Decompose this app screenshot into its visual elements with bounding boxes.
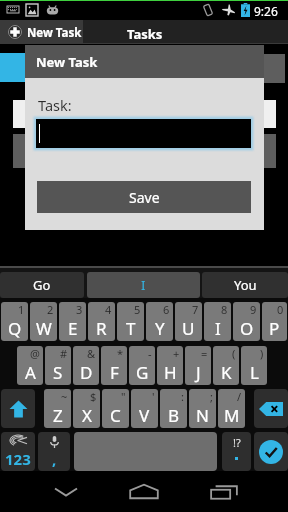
button[interactable]: 3 xyxy=(59,302,86,341)
button[interactable]: Backspace xyxy=(254,389,288,428)
staticText: F xyxy=(110,361,119,384)
button[interactable]: You xyxy=(202,272,288,298)
staticText: R xyxy=(96,317,107,340)
button[interactable]: Home xyxy=(110,471,178,512)
button[interactable]: 7 xyxy=(175,302,202,341)
button[interactable]: + xyxy=(157,346,183,385)
staticText: I xyxy=(215,317,221,340)
button[interactable]: Space xyxy=(74,432,217,471)
staticText: N xyxy=(196,404,209,427)
staticText: # xyxy=(60,346,68,361)
staticText: Z xyxy=(53,404,63,427)
button[interactable]: Recents xyxy=(190,471,258,512)
staticText: & xyxy=(87,346,96,361)
staticText: U xyxy=(182,317,195,340)
button[interactable]: * xyxy=(101,346,127,385)
button[interactable]: Shift xyxy=(1,389,35,428)
staticText: 9 xyxy=(250,302,257,317)
staticText: ' xyxy=(152,389,155,404)
button[interactable]: ( xyxy=(213,346,239,385)
staticText: " xyxy=(121,389,126,404)
staticText: ) xyxy=(260,346,264,361)
button[interactable]: @ xyxy=(17,346,43,385)
staticText: J xyxy=(196,361,201,384)
button[interactable]: !? xyxy=(222,432,251,471)
button[interactable]: I xyxy=(87,272,200,298)
button[interactable]: 8 xyxy=(204,302,231,341)
staticText: 123 xyxy=(5,449,31,469)
staticText: E xyxy=(68,317,78,340)
button[interactable]: $ xyxy=(73,389,100,428)
button[interactable]: & xyxy=(73,346,99,385)
button[interactable]: ~ xyxy=(44,389,71,428)
button[interactable]: 5 xyxy=(117,302,144,341)
staticText: T xyxy=(126,317,136,340)
button[interactable]: Back xyxy=(30,471,102,512)
staticText: K xyxy=(221,361,232,384)
staticText: O xyxy=(240,317,254,340)
button[interactable]: 123 xyxy=(1,432,35,471)
staticText: New Task xyxy=(27,25,82,41)
button[interactable]: 6 xyxy=(146,302,173,341)
staticText: Y xyxy=(155,317,165,340)
button[interactable]: ' xyxy=(131,389,158,428)
staticText: 4 xyxy=(105,302,112,317)
staticText: W xyxy=(36,317,52,340)
button[interactable]: - xyxy=(129,346,155,385)
staticText: Go xyxy=(33,276,51,294)
button[interactable]: Enter xyxy=(254,432,288,471)
button[interactable]: 0 xyxy=(262,302,287,341)
button[interactable]: , xyxy=(38,432,70,471)
staticText: / xyxy=(237,389,242,404)
staticText: 0 xyxy=(277,302,284,317)
staticText: X xyxy=(82,404,92,427)
button[interactable]: # xyxy=(45,346,71,385)
staticText: ( xyxy=(232,346,236,361)
staticText: S xyxy=(53,361,63,384)
staticText: 7 xyxy=(192,302,199,317)
button[interactable]: 1 xyxy=(1,302,28,341)
staticText: P xyxy=(269,317,280,340)
staticText: 5 xyxy=(134,302,141,317)
staticText: Task: xyxy=(38,95,72,115)
staticText: M xyxy=(224,404,240,427)
staticText: L xyxy=(250,361,259,384)
staticText: C xyxy=(110,404,121,427)
staticText: 8 xyxy=(221,302,228,317)
button[interactable]: Save xyxy=(37,181,251,213)
button[interactable]: 4 xyxy=(88,302,115,341)
staticText: 9:26 xyxy=(254,3,278,19)
staticText: ; xyxy=(210,389,213,404)
button[interactable]: " xyxy=(102,389,129,428)
staticText: 3 xyxy=(76,302,83,317)
staticText: - xyxy=(148,346,152,361)
staticText: Tasks xyxy=(127,25,163,43)
button[interactable]: Go xyxy=(0,272,84,298)
button[interactable]: ; xyxy=(189,389,216,428)
staticText: * xyxy=(117,346,124,361)
staticText: 2 xyxy=(47,302,54,317)
button[interactable]: : xyxy=(160,389,187,428)
staticText: $ xyxy=(90,389,97,404)
staticText: = xyxy=(201,346,208,361)
staticText: I xyxy=(141,276,146,294)
button[interactable]: = xyxy=(185,346,211,385)
staticText: H xyxy=(164,361,177,384)
staticText: , xyxy=(52,449,57,469)
staticText: B xyxy=(168,404,180,427)
staticText: Save xyxy=(129,188,160,207)
staticText: + xyxy=(173,346,180,361)
button[interactable]: / xyxy=(218,389,245,428)
staticText: @ xyxy=(30,346,40,361)
staticText: 1 xyxy=(18,302,25,317)
button[interactable]: 9 xyxy=(233,302,260,341)
staticText: You xyxy=(234,276,257,294)
button[interactable]: 2 xyxy=(30,302,57,341)
staticText: : xyxy=(181,389,184,404)
button[interactable]: New Task xyxy=(0,20,83,44)
button[interactable]: ) xyxy=(241,346,267,385)
staticText: !? xyxy=(233,435,241,450)
staticText: New Task xyxy=(36,53,98,71)
staticText: Q xyxy=(8,317,22,340)
staticText: A xyxy=(25,361,36,384)
